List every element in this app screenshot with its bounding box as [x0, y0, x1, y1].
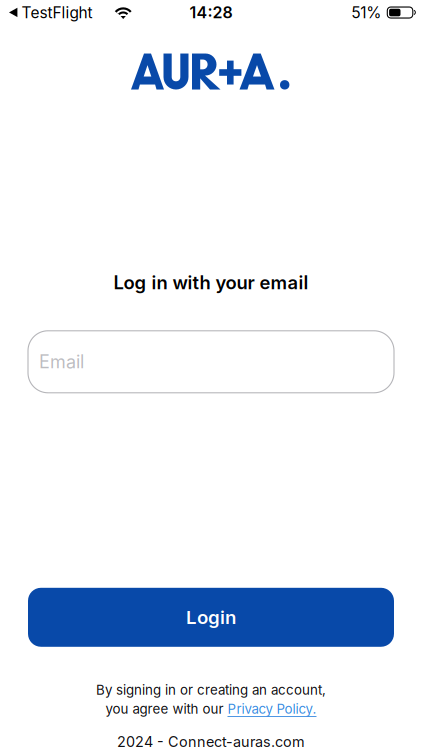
staticText: 2024 - Connect-auras.com — [117, 733, 305, 750]
button[interactable]: TestFlight — [9, 3, 93, 22]
staticText: Log in with your email — [113, 271, 308, 294]
staticText: 51% — [351, 3, 381, 22]
button[interactable]: Login — [28, 588, 394, 647]
staticText: Email — [39, 351, 84, 373]
button[interactable]: Privacy Policy. — [227, 701, 316, 717]
staticText: you agree with our — [105, 701, 223, 717]
staticText: Privacy Policy. — [227, 701, 316, 717]
staticText: Login — [186, 606, 236, 629]
staticText: 14:28 — [189, 3, 232, 22]
staticText: TestFlight — [22, 3, 93, 22]
staticText: By signing in or creating an account, — [96, 682, 326, 698]
